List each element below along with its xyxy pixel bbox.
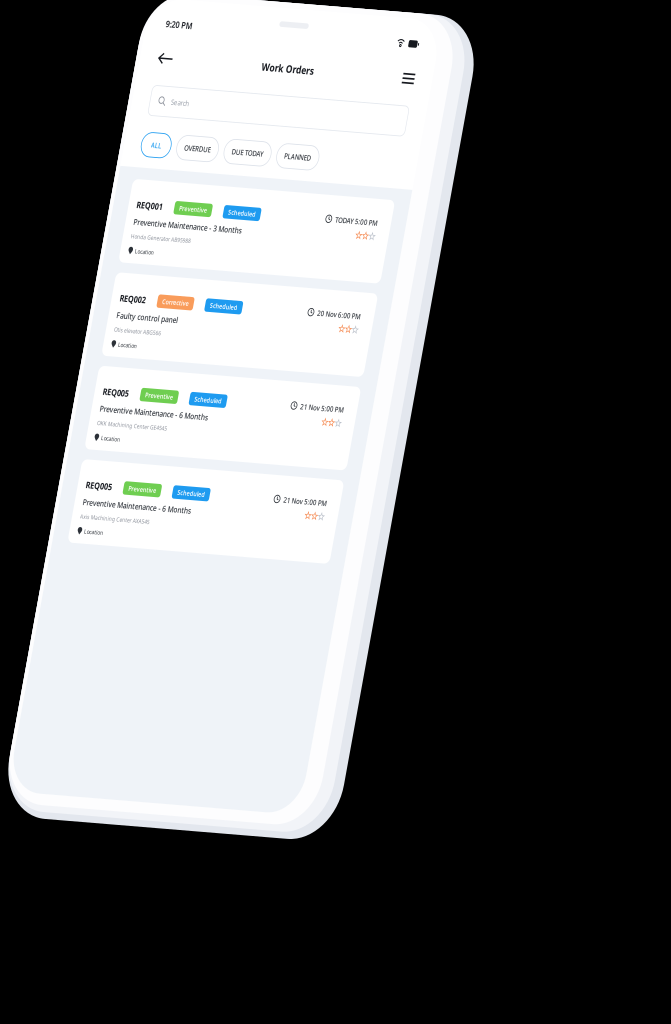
button[interactable]: DUE TODAY — [225, 240, 331, 284]
button[interactable]: ALL — [38, 240, 105, 284]
button[interactable]: REQ005 — [34, 829, 626, 979]
button[interactable]: REQ002 — [34, 493, 626, 643]
staticText: Location — [67, 445, 110, 459]
button[interactable]: PLANNED — [344, 240, 439, 284]
button[interactable]: REQ005 — [34, 661, 626, 811]
button[interactable]: REQ001 — [34, 325, 626, 475]
staticText: REQ001 — [52, 359, 111, 380]
staticText: Search — [87, 174, 128, 192]
button[interactable]: OVERDUE — [118, 240, 212, 284]
staticText: Preventive — [148, 362, 211, 378]
staticText: PLANNED — [361, 253, 422, 271]
staticText: REQ002 — [52, 527, 111, 548]
staticText: OVERDUE — [135, 253, 195, 271]
staticText: Scheduled — [259, 362, 321, 378]
staticText: Honda Generator AB95988 — [52, 419, 187, 433]
button[interactable]: Search — [40, 156, 620, 210]
staticText: Preventive Maintenance - 3 Months — [52, 391, 297, 410]
staticText: Work Orders — [274, 95, 392, 119]
